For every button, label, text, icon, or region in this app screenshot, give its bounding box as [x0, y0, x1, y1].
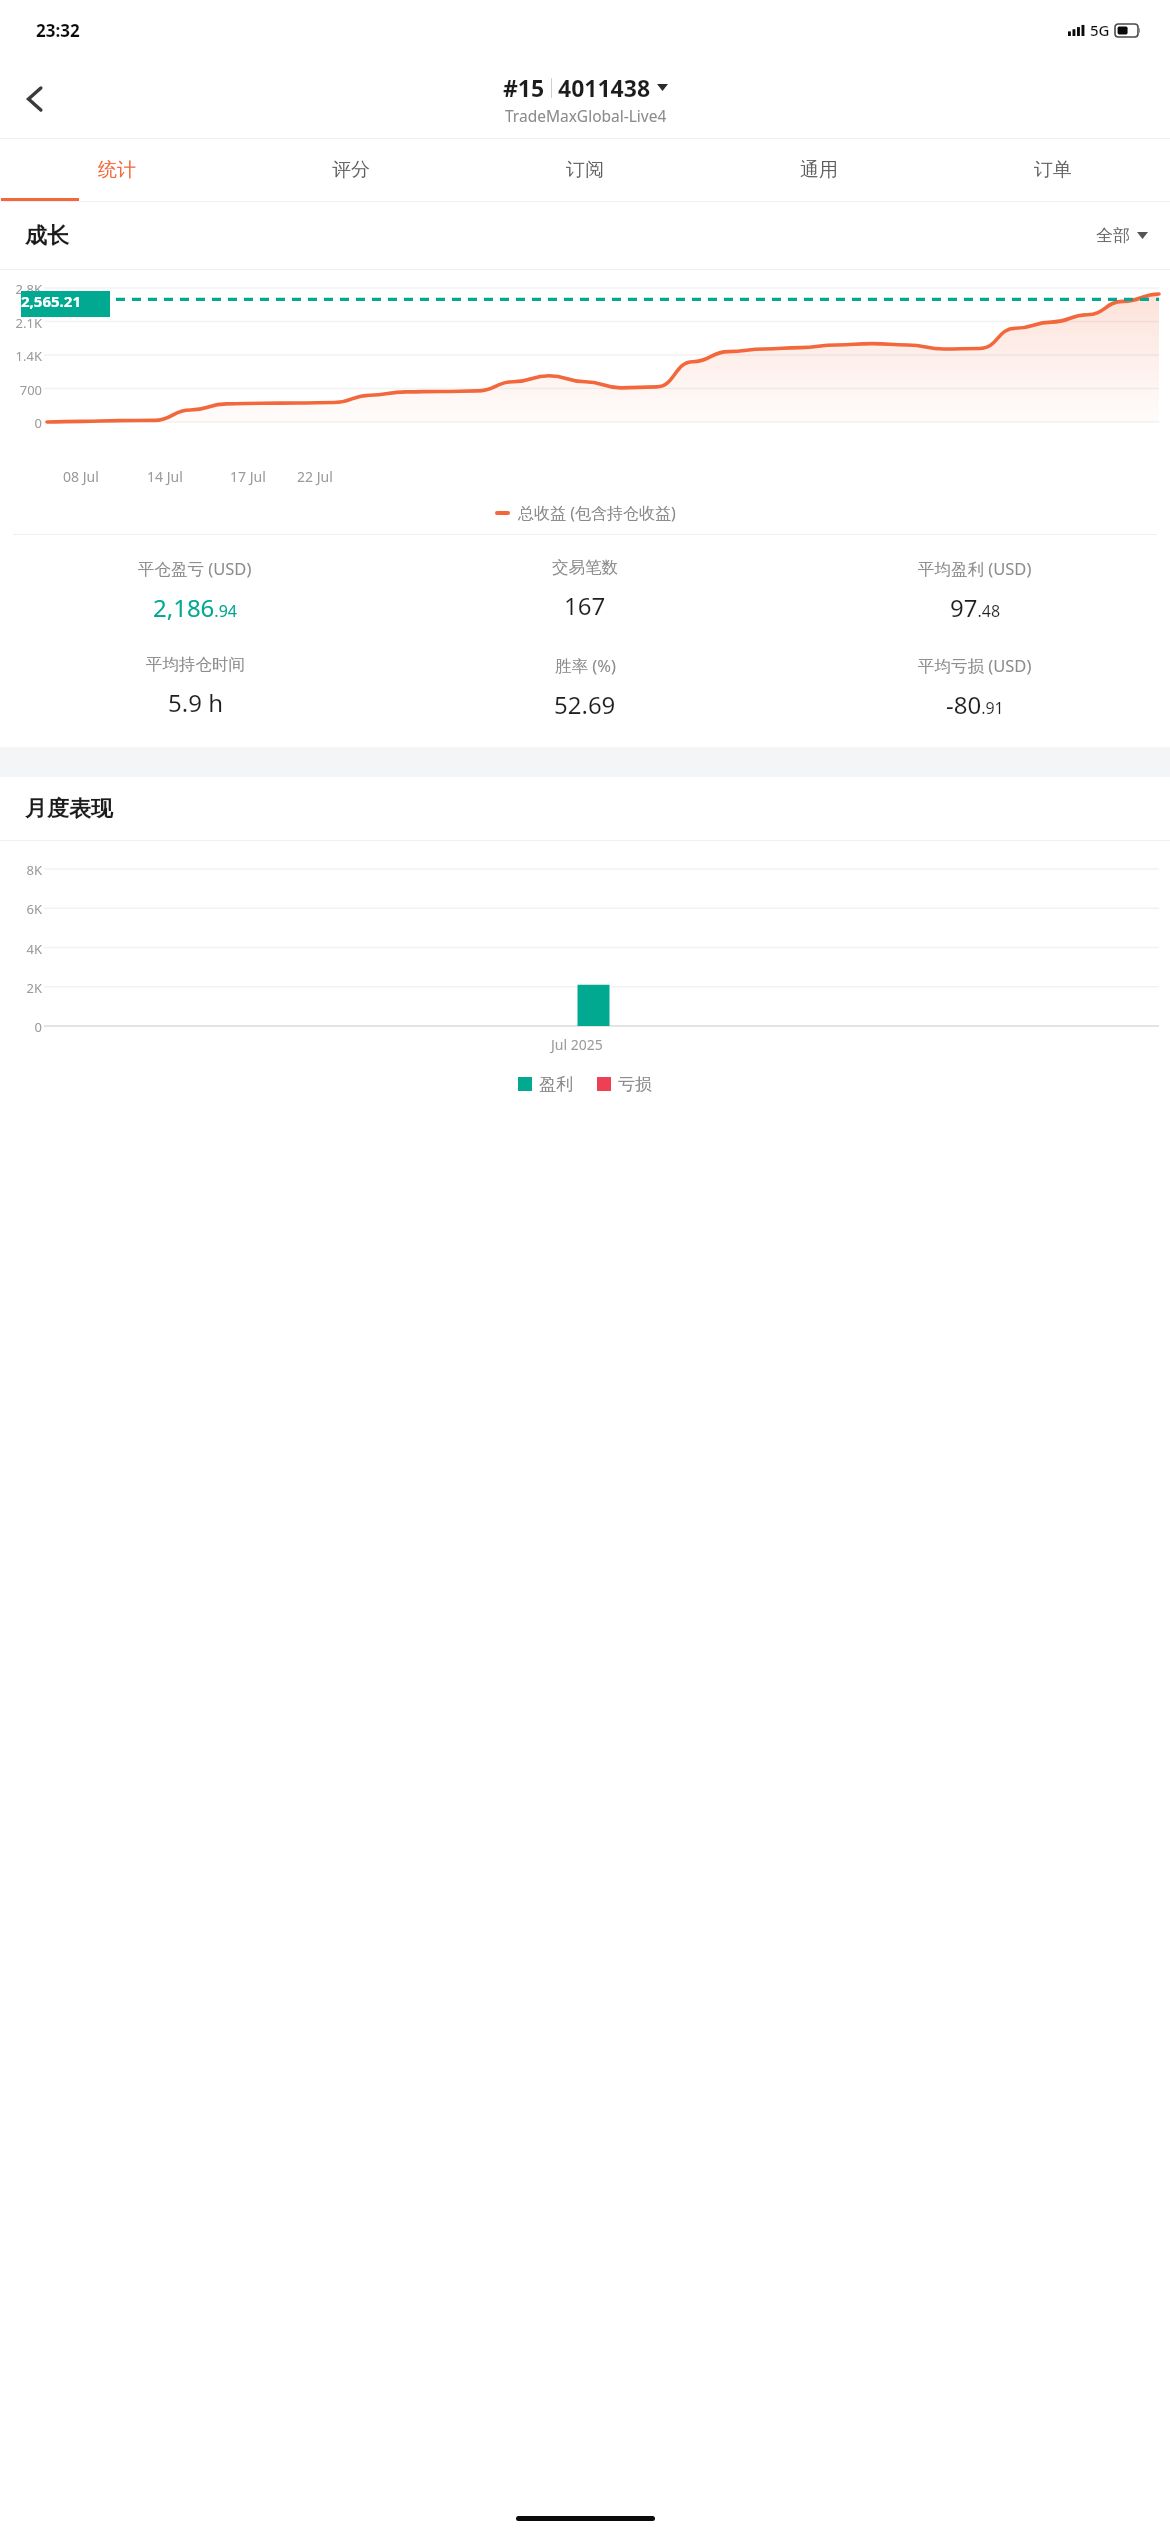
staticText: 17 Jul	[230, 467, 266, 486]
staticText: 统计	[98, 158, 136, 182]
staticText: TradeMaxGlobal-Live4	[505, 105, 667, 126]
staticText: 成长	[25, 222, 69, 250]
staticText: 2,186.94	[153, 591, 237, 624]
staticText: 1.4K	[10, 347, 42, 365]
staticText: 评分	[332, 158, 370, 182]
button[interactable]: 通用	[702, 138, 936, 201]
staticText: 2.1K	[10, 314, 42, 332]
staticText: 平均盈利 (USD)	[918, 557, 1032, 580]
button[interactable]: 订单	[936, 138, 1170, 201]
staticText: 亏损	[618, 1074, 652, 1095]
staticText: 0	[10, 1018, 42, 1036]
staticText: Jul 2025	[551, 1035, 603, 1054]
staticText: 2.8K	[10, 280, 42, 298]
staticText: 总收益 (包含持仓收益)	[518, 502, 676, 524]
button[interactable]: #15	[503, 72, 668, 126]
staticText: 全部	[1096, 225, 1130, 246]
staticText: 月度表现	[25, 795, 113, 823]
staticText: 08 Jul	[63, 467, 99, 486]
staticText: 2,565.21 USD	[21, 291, 110, 317]
staticText: 0	[10, 414, 42, 432]
staticText: 23:32	[36, 19, 80, 42]
staticText: 700	[10, 381, 42, 399]
staticText: 盈利	[539, 1074, 573, 1095]
button[interactable]: 全部	[1096, 225, 1148, 246]
staticText: 5G	[1090, 20, 1110, 40]
staticText: 2K	[10, 979, 42, 997]
staticText: 4K	[10, 940, 42, 958]
button[interactable]: Back	[8, 71, 64, 127]
button[interactable]: 订阅	[468, 138, 702, 201]
staticText: 通用	[800, 158, 838, 182]
staticText: 胜率 (%)	[555, 654, 616, 677]
staticText: 订单	[1034, 158, 1072, 182]
staticText: 5.9 h	[168, 686, 223, 719]
staticText: 14 Jul	[147, 467, 183, 486]
staticText: 167	[564, 589, 606, 622]
staticText: 平仓盈亏 (USD)	[138, 557, 252, 580]
staticText: 平均持仓时间	[146, 654, 245, 675]
staticText: 订阅	[566, 158, 604, 182]
staticText: 8K	[10, 861, 42, 879]
staticText: 22 Jul	[297, 467, 333, 486]
staticText: 交易笔数	[552, 557, 618, 578]
staticText: #15	[503, 72, 545, 103]
staticText: 52.69	[554, 688, 616, 721]
button[interactable]: 统计	[0, 138, 234, 201]
staticText: 97.48	[950, 591, 1001, 624]
button[interactable]: 评分	[234, 138, 468, 201]
staticText: 4011438	[558, 72, 651, 103]
staticText: 平均亏损 (USD)	[918, 654, 1032, 677]
staticText: -80.91	[946, 688, 1004, 721]
staticText: 6K	[10, 900, 42, 918]
